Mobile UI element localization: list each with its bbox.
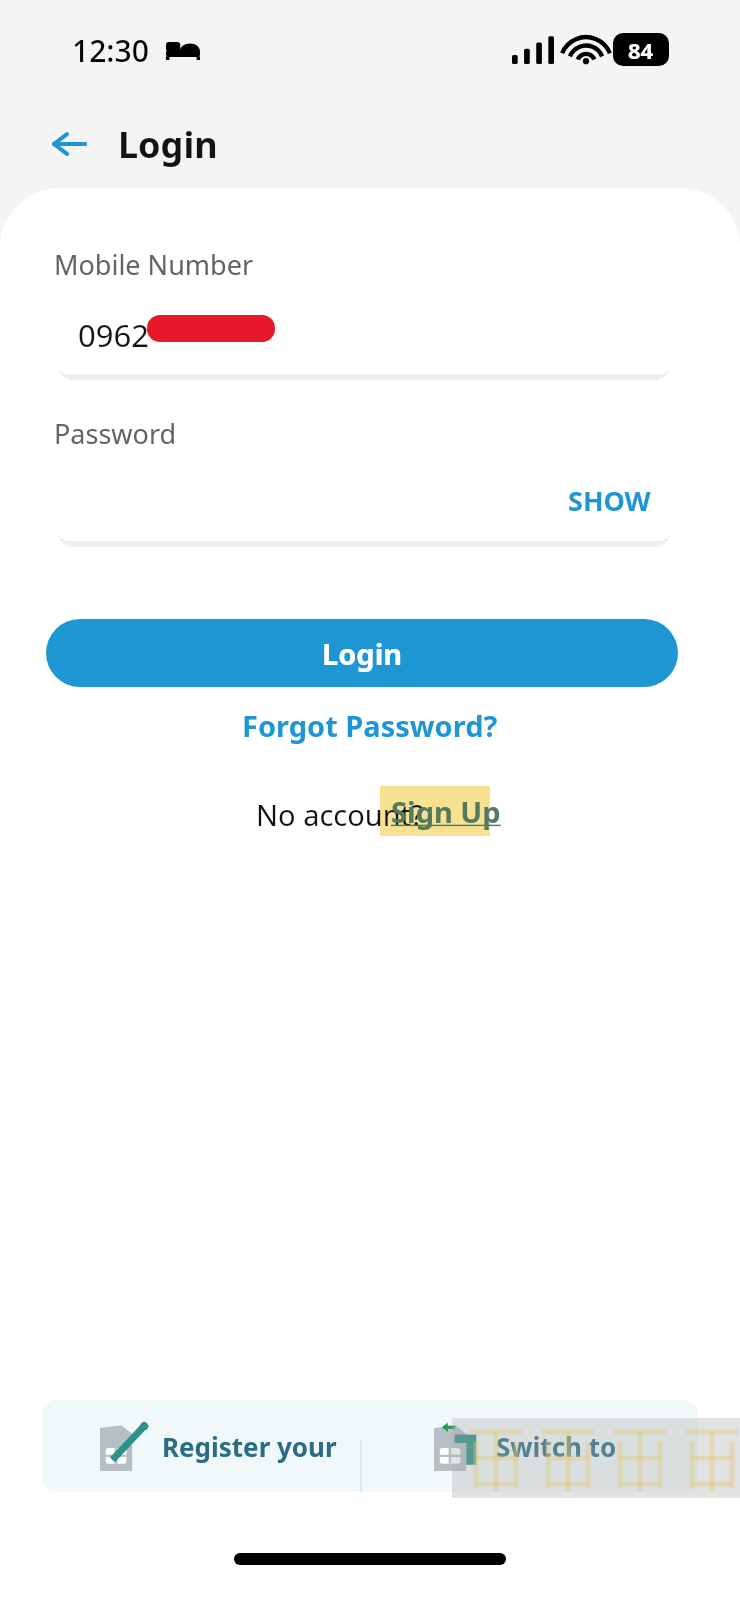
button[interactable]: SHOW xyxy=(55,459,673,541)
staticText: No account? xyxy=(256,795,424,834)
staticText: Password xyxy=(54,415,177,452)
button[interactable]: Login xyxy=(46,619,678,687)
staticText: Login xyxy=(118,120,218,169)
button[interactable]: Register your SIM xyxy=(42,1400,370,1492)
staticText: 12:30 xyxy=(72,30,149,71)
staticText: SHOW xyxy=(568,482,651,519)
staticText: Mobile Number xyxy=(54,246,254,283)
button[interactable]: 0962 xyxy=(55,292,673,374)
staticText: 0962 xyxy=(78,314,149,356)
staticText: Sign Up xyxy=(391,792,501,831)
button[interactable]: Switch to Smart xyxy=(372,1400,698,1492)
staticText: Forgot Password? xyxy=(242,706,498,745)
staticText: Login xyxy=(322,634,403,673)
staticText: Register your SIM xyxy=(162,1429,370,1464)
button[interactable]: Forgot Password? xyxy=(226,700,514,751)
staticText: 84 xyxy=(628,35,654,65)
button[interactable]: Back xyxy=(40,115,98,173)
staticText: Switch to Smart xyxy=(496,1429,698,1464)
button[interactable]: Sign Up xyxy=(391,792,501,831)
button[interactable]: SHOW xyxy=(564,476,655,525)
